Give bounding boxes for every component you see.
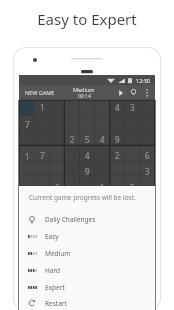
staticText: 5 <box>130 182 135 193</box>
staticText: Expert <box>45 283 65 292</box>
button[interactable]: Medium <box>19 245 155 262</box>
button[interactable]: Restart <box>19 296 155 310</box>
button[interactable] <box>35 228 50 243</box>
button[interactable]: 9 <box>110 132 125 147</box>
button[interactable] <box>19 196 35 212</box>
button[interactable] <box>65 100 80 115</box>
button[interactable] <box>35 212 50 227</box>
button[interactable]: Easy <box>19 228 155 245</box>
button[interactable]: 4 <box>80 148 95 163</box>
button[interactable]: NEW GAME <box>19 89 55 96</box>
button[interactable] <box>140 116 155 131</box>
button[interactable] <box>50 228 65 243</box>
button[interactable] <box>95 116 110 131</box>
button[interactable] <box>80 196 95 211</box>
button[interactable]: 2 <box>110 148 125 163</box>
button[interactable] <box>80 212 95 227</box>
button[interactable]: Daily Challenges <box>19 211 155 228</box>
button[interactable]: 4 <box>110 100 125 115</box>
button[interactable] <box>35 180 50 195</box>
button[interactable] <box>50 148 65 163</box>
staticText: NEW GAME <box>25 89 55 96</box>
staticText: 6 <box>145 150 150 161</box>
button[interactable] <box>110 164 125 179</box>
button[interactable] <box>19 100 35 116</box>
button[interactable]: 6 <box>50 180 65 195</box>
staticText: 3 <box>145 166 150 177</box>
button[interactable] <box>19 212 35 228</box>
button[interactable]: 5 <box>125 180 140 195</box>
button[interactable]: 4 <box>95 132 110 147</box>
staticText: Medium <box>73 86 95 93</box>
button[interactable] <box>125 132 140 147</box>
button[interactable] <box>50 100 65 115</box>
button[interactable]: 5 <box>80 132 95 147</box>
button[interactable] <box>50 196 65 211</box>
button[interactable]: 1 <box>19 148 35 164</box>
button[interactable] <box>65 196 80 211</box>
button[interactable]: 7 <box>35 148 50 163</box>
button[interactable] <box>140 180 155 195</box>
staticText: 7 <box>40 150 45 161</box>
button[interactable] <box>140 100 155 115</box>
button[interactable]: 9 <box>80 164 95 179</box>
button[interactable]: 3 <box>125 100 140 115</box>
button[interactable] <box>95 100 110 115</box>
button[interactable]: Play <box>114 86 127 99</box>
button[interactable] <box>50 132 65 147</box>
button[interactable] <box>110 196 125 211</box>
button[interactable] <box>125 196 140 211</box>
button[interactable]: Hint <box>127 86 140 99</box>
button[interactable]: Hard <box>19 262 155 279</box>
button[interactable]: 3 <box>140 164 155 179</box>
button[interactable]: 1 <box>95 180 110 195</box>
button[interactable] <box>80 180 95 195</box>
button[interactable] <box>95 148 110 163</box>
staticText: Easy <box>45 232 59 241</box>
button[interactable] <box>50 164 65 179</box>
button[interactable] <box>95 196 110 211</box>
button[interactable]: 7 <box>19 116 35 132</box>
button[interactable]: More options <box>140 86 153 99</box>
button[interactable] <box>19 180 35 196</box>
button[interactable] <box>110 180 125 195</box>
button[interactable]: 1 <box>35 100 50 115</box>
button[interactable] <box>50 116 65 131</box>
button[interactable] <box>19 164 35 180</box>
button[interactable] <box>140 132 155 147</box>
button[interactable] <box>35 196 50 211</box>
button[interactable]: 6 <box>140 148 155 163</box>
button[interactable] <box>50 212 65 227</box>
staticText: 3 <box>130 102 135 113</box>
button[interactable] <box>65 212 80 227</box>
button[interactable] <box>35 132 50 147</box>
button[interactable]: Expert <box>19 279 155 296</box>
button[interactable] <box>19 132 35 148</box>
button[interactable] <box>80 100 95 115</box>
button[interactable] <box>19 228 35 244</box>
button[interactable] <box>65 180 80 195</box>
button[interactable] <box>95 164 110 179</box>
button[interactable]: 2 <box>65 132 80 147</box>
